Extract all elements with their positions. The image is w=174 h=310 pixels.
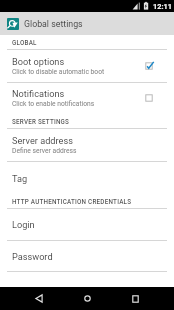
- button[interactable]: App icon: [7, 18, 19, 30]
- button[interactable]: Boot options: [0, 50, 174, 82]
- button[interactable]: Unchecked: [142, 91, 156, 105]
- staticText: Define server address: [12, 147, 77, 155]
- button[interactable]: Home: [71, 287, 103, 310]
- staticText: Tag: [12, 173, 28, 184]
- staticText: SERVER SETTINGS: [12, 118, 172, 125]
- staticText: Click to disable automatic boot: [12, 68, 105, 76]
- button[interactable]: Login: [0, 209, 174, 240]
- button[interactable]: Password: [0, 241, 174, 271]
- button[interactable]: Tag: [0, 162, 174, 194]
- staticText: HTTP AUTHENTICATION CREDENTIALS: [12, 198, 172, 205]
- staticText: Password: [12, 251, 53, 262]
- button[interactable]: Checked: [142, 59, 156, 73]
- staticText: Click to enable notifications: [12, 100, 95, 108]
- staticText: GLOBAL: [12, 39, 172, 46]
- staticText: Login: [12, 219, 35, 230]
- button[interactable]: Back: [23, 287, 55, 310]
- staticText: 12:11: [153, 2, 173, 11]
- button[interactable]: Recents: [119, 287, 151, 310]
- button[interactable]: Notifications: [0, 83, 174, 113]
- staticText: Server address: [12, 135, 73, 146]
- staticText: Global settings: [24, 19, 83, 29]
- staticText: Notifications: [12, 88, 65, 99]
- button[interactable]: Server address: [0, 129, 174, 161]
- staticText: Boot options: [12, 56, 65, 67]
